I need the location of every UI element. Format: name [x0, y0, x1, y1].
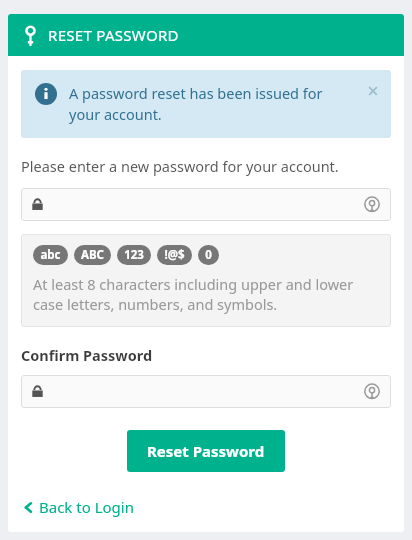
staticText: RESET PASSWORD — [48, 25, 179, 45]
staticText: !@$ — [164, 247, 185, 263]
staticText: Reset Password — [147, 441, 265, 461]
staticText: A password reset has been issued for you… — [69, 83, 357, 125]
staticText: At least 8 characters including upper an… — [33, 274, 379, 315]
button[interactable]: Dismiss alert — [365, 83, 381, 99]
staticText: 123 — [124, 247, 144, 263]
staticText: Please enter a new password for your acc… — [21, 156, 339, 176]
other: Show password manager — [363, 383, 381, 401]
staticText: 0 — [205, 247, 212, 263]
button[interactable]: Show password manager — [21, 188, 391, 221]
button[interactable]: Show password manager — [21, 375, 391, 408]
staticText: ABC — [81, 247, 104, 263]
staticText: Confirm Password — [21, 345, 153, 365]
other: Show password manager — [363, 196, 381, 214]
staticText: Back to Login — [39, 497, 134, 517]
button[interactable]: Back to Login — [21, 494, 136, 520]
staticText: abc — [40, 247, 61, 263]
button[interactable]: Reset Password — [127, 430, 285, 472]
